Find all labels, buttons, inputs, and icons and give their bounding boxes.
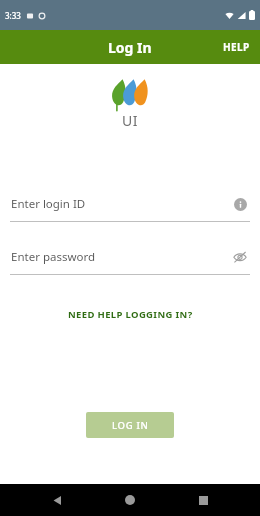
- staticText: NEED HELP LOGGING IN?: [68, 308, 193, 321]
- button[interactable]: Enter login ID: [0, 192, 260, 216]
- button[interactable]: Recent apps: [187, 484, 219, 516]
- staticText: HELP: [223, 40, 250, 54]
- button[interactable]: Show password: [231, 248, 249, 266]
- staticText: UI: [122, 111, 138, 130]
- button[interactable]: Home: [114, 484, 146, 516]
- button[interactable]: Login ID information: [231, 195, 249, 213]
- button[interactable]: Enter password: [0, 245, 260, 269]
- button[interactable]: LOG IN: [86, 412, 174, 438]
- staticText: Enter login ID: [11, 196, 231, 212]
- button[interactable]: NEED HELP LOGGING IN?: [58, 303, 203, 326]
- staticText: Enter password: [11, 249, 231, 265]
- button[interactable]: HELP: [213, 32, 260, 62]
- staticText: 3:33: [5, 10, 21, 21]
- staticText: LOG IN: [112, 419, 149, 432]
- staticText: Log In: [108, 38, 152, 57]
- button[interactable]: Back: [41, 484, 73, 516]
